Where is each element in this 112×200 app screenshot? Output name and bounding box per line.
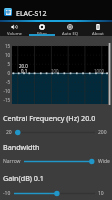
staticText: Gain(dB) 0.1 [3, 173, 44, 183]
staticText: ELAC-S12 [16, 9, 47, 19]
staticText: Bandwidth [3, 142, 40, 152]
staticText: -15 [0, 97, 10, 103]
staticText: 10 [0, 52, 10, 58]
staticText: 0 [0, 70, 10, 76]
staticText: Auto EQ [62, 31, 78, 36]
staticText: 1000 [94, 68, 105, 74]
staticText: -10 [0, 88, 10, 94]
staticText: 200 [98, 129, 111, 136]
staticText: -10 [3, 190, 11, 197]
button[interactable]: -10 [0, 188, 112, 199]
staticText: -5 [0, 79, 10, 85]
staticText: 5 [0, 61, 10, 67]
staticText: Wide [98, 158, 111, 165]
button[interactable]: Auto EQ [56, 22, 84, 36]
staticText: 20 [6, 129, 12, 136]
staticText: 0.1 [21, 68, 28, 74]
button[interactable]: Volume [0, 22, 28, 36]
staticText: Narrow [3, 158, 21, 165]
button[interactable]: About [84, 22, 112, 36]
button[interactable]: Filter [28, 22, 56, 36]
button[interactable]: 20 [0, 127, 112, 138]
staticText: Central Frequency (Hz) 20.0 [3, 113, 96, 123]
staticText: Volume [7, 31, 22, 36]
staticText: 100 [51, 68, 59, 74]
staticText: 10 [98, 190, 111, 197]
staticText: 15 [0, 43, 10, 49]
staticText: About [92, 31, 104, 36]
button[interactable]: Narrow [0, 156, 112, 167]
staticText: 20.0 [19, 63, 28, 69]
staticText: Filter [37, 31, 47, 36]
